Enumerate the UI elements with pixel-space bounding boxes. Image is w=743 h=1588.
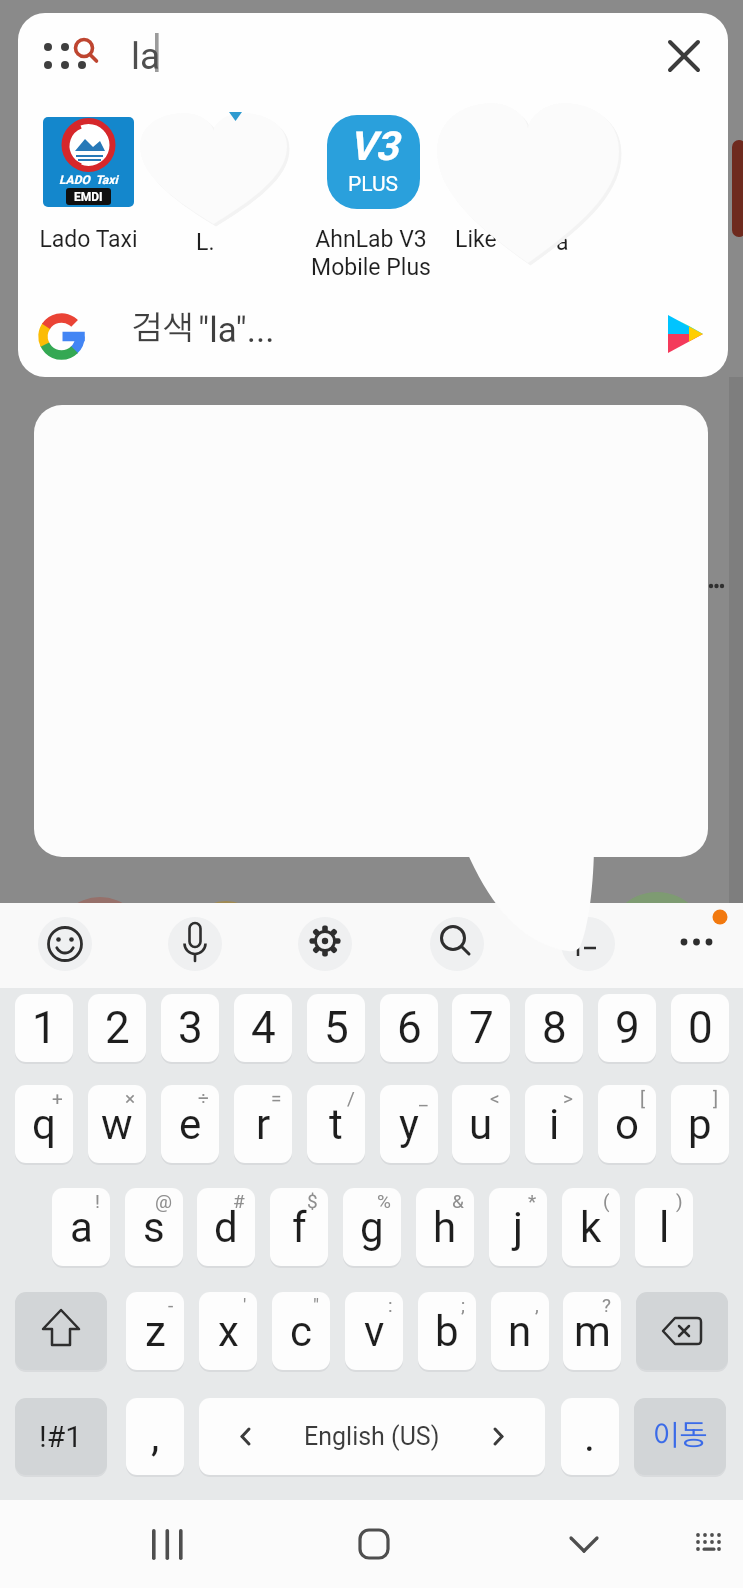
button[interactable]: 9 (598, 994, 656, 1062)
button[interactable]: 5 (307, 994, 365, 1062)
button[interactable] (558, 914, 618, 974)
staticText: % (377, 1190, 391, 1212)
staticText: / (347, 1087, 355, 1109)
button[interactable] (478, 113, 579, 283)
button[interactable] (656, 28, 712, 84)
button[interactable]: q (15, 1085, 73, 1163)
button[interactable]: j (489, 1188, 547, 1266)
button[interactable] (38, 113, 139, 283)
button[interactable]: 3 (161, 994, 219, 1062)
button[interactable]: x (199, 1292, 257, 1370)
button[interactable] (178, 113, 279, 283)
staticText: [ (640, 1087, 646, 1109)
staticText: 5 (324, 1002, 349, 1054)
staticText: ] (713, 1087, 719, 1109)
button[interactable]: 6 (380, 994, 438, 1062)
staticText: Mobile Plus (311, 254, 431, 281)
staticText: !#1 (39, 1419, 83, 1454)
staticText: z (145, 1307, 166, 1356)
button[interactable]: English (US) (199, 1398, 545, 1475)
staticText: + (52, 1087, 63, 1109)
staticText: V3 (349, 123, 399, 170)
button[interactable]: 0 (671, 994, 729, 1062)
button[interactable]: z (126, 1292, 184, 1370)
button[interactable]: 4 (234, 994, 292, 1062)
button[interactable]: f (270, 1188, 328, 1266)
button[interactable]: r (234, 1085, 292, 1163)
button[interactable]: LADO Taxi (43, 117, 134, 207)
staticText: 2 (105, 1002, 130, 1054)
button[interactable]: l (635, 1188, 693, 1266)
staticText: a (556, 229, 569, 256)
button[interactable]: 1 (15, 994, 73, 1062)
staticText: r (256, 1100, 271, 1149)
button[interactable]: m (563, 1292, 621, 1370)
button[interactable] (165, 914, 225, 974)
staticText: 4 (251, 1002, 276, 1054)
staticText: "la"... (198, 310, 275, 351)
staticText: ; (461, 1294, 466, 1316)
button[interactable]: , (126, 1398, 184, 1475)
button[interactable] (321, 113, 422, 283)
button[interactable]: e (161, 1085, 219, 1163)
staticText: u (469, 1100, 493, 1149)
button[interactable] (667, 914, 727, 974)
button[interactable]: v (345, 1292, 403, 1370)
button[interactable]: . (561, 1398, 619, 1475)
staticText: 1 (32, 1002, 57, 1054)
button[interactable]: o (598, 1085, 656, 1163)
staticText: 7 (469, 1002, 494, 1054)
button[interactable]: 2 (88, 994, 146, 1062)
button[interactable] (15, 1292, 107, 1370)
button[interactable] (35, 914, 95, 974)
button[interactable]: k (562, 1188, 620, 1266)
staticText: c (290, 1307, 312, 1356)
staticText: AhnLab V3 (315, 226, 427, 253)
staticText: o (615, 1100, 639, 1149)
staticText: × (125, 1087, 136, 1109)
staticText: v (364, 1307, 385, 1356)
button[interactable] (18, 298, 728, 377)
button[interactable]: u (452, 1085, 510, 1163)
button[interactable]: n (491, 1292, 549, 1370)
staticText: ÷ (198, 1087, 209, 1109)
button[interactable]: g (343, 1188, 401, 1266)
button[interactable]: s (125, 1188, 183, 1266)
button[interactable]: h (416, 1188, 474, 1266)
staticText: l (659, 1203, 670, 1252)
button[interactable] (547, 1505, 622, 1580)
button[interactable]: c (272, 1292, 330, 1370)
staticText: : (388, 1294, 393, 1316)
staticText: - (168, 1294, 174, 1316)
staticText: k (580, 1203, 602, 1252)
button[interactable]: t (307, 1085, 365, 1163)
staticText: , (151, 1412, 160, 1461)
staticText: q (32, 1100, 56, 1149)
button[interactable]: y (380, 1085, 438, 1163)
staticText: h (433, 1203, 457, 1252)
staticText: " (313, 1294, 320, 1316)
button[interactable] (337, 1505, 412, 1580)
button[interactable]: p (671, 1085, 729, 1163)
button[interactable]: b (418, 1292, 476, 1370)
button[interactable] (295, 914, 355, 974)
staticText: j (513, 1203, 524, 1252)
button[interactable]: d (197, 1188, 255, 1266)
staticText: 0 (688, 1002, 713, 1054)
button[interactable]: !#1 (15, 1398, 107, 1475)
button[interactable]: 7 (452, 994, 510, 1062)
button[interactable]: V3 (327, 115, 420, 209)
button[interactable]: i (525, 1085, 583, 1163)
button[interactable] (685, 1510, 735, 1570)
staticText: 6 (397, 1002, 422, 1054)
button[interactable] (636, 1292, 728, 1370)
staticText: . (584, 1412, 596, 1461)
staticText: English (US) (304, 1422, 440, 1451)
button[interactable] (427, 914, 487, 974)
staticText: # (233, 1190, 245, 1212)
button[interactable]: w (88, 1085, 146, 1163)
button[interactable]: a (52, 1188, 110, 1266)
button[interactable] (130, 1505, 205, 1580)
button[interactable]: 이동 (634, 1398, 726, 1475)
button[interactable]: 8 (525, 994, 583, 1062)
